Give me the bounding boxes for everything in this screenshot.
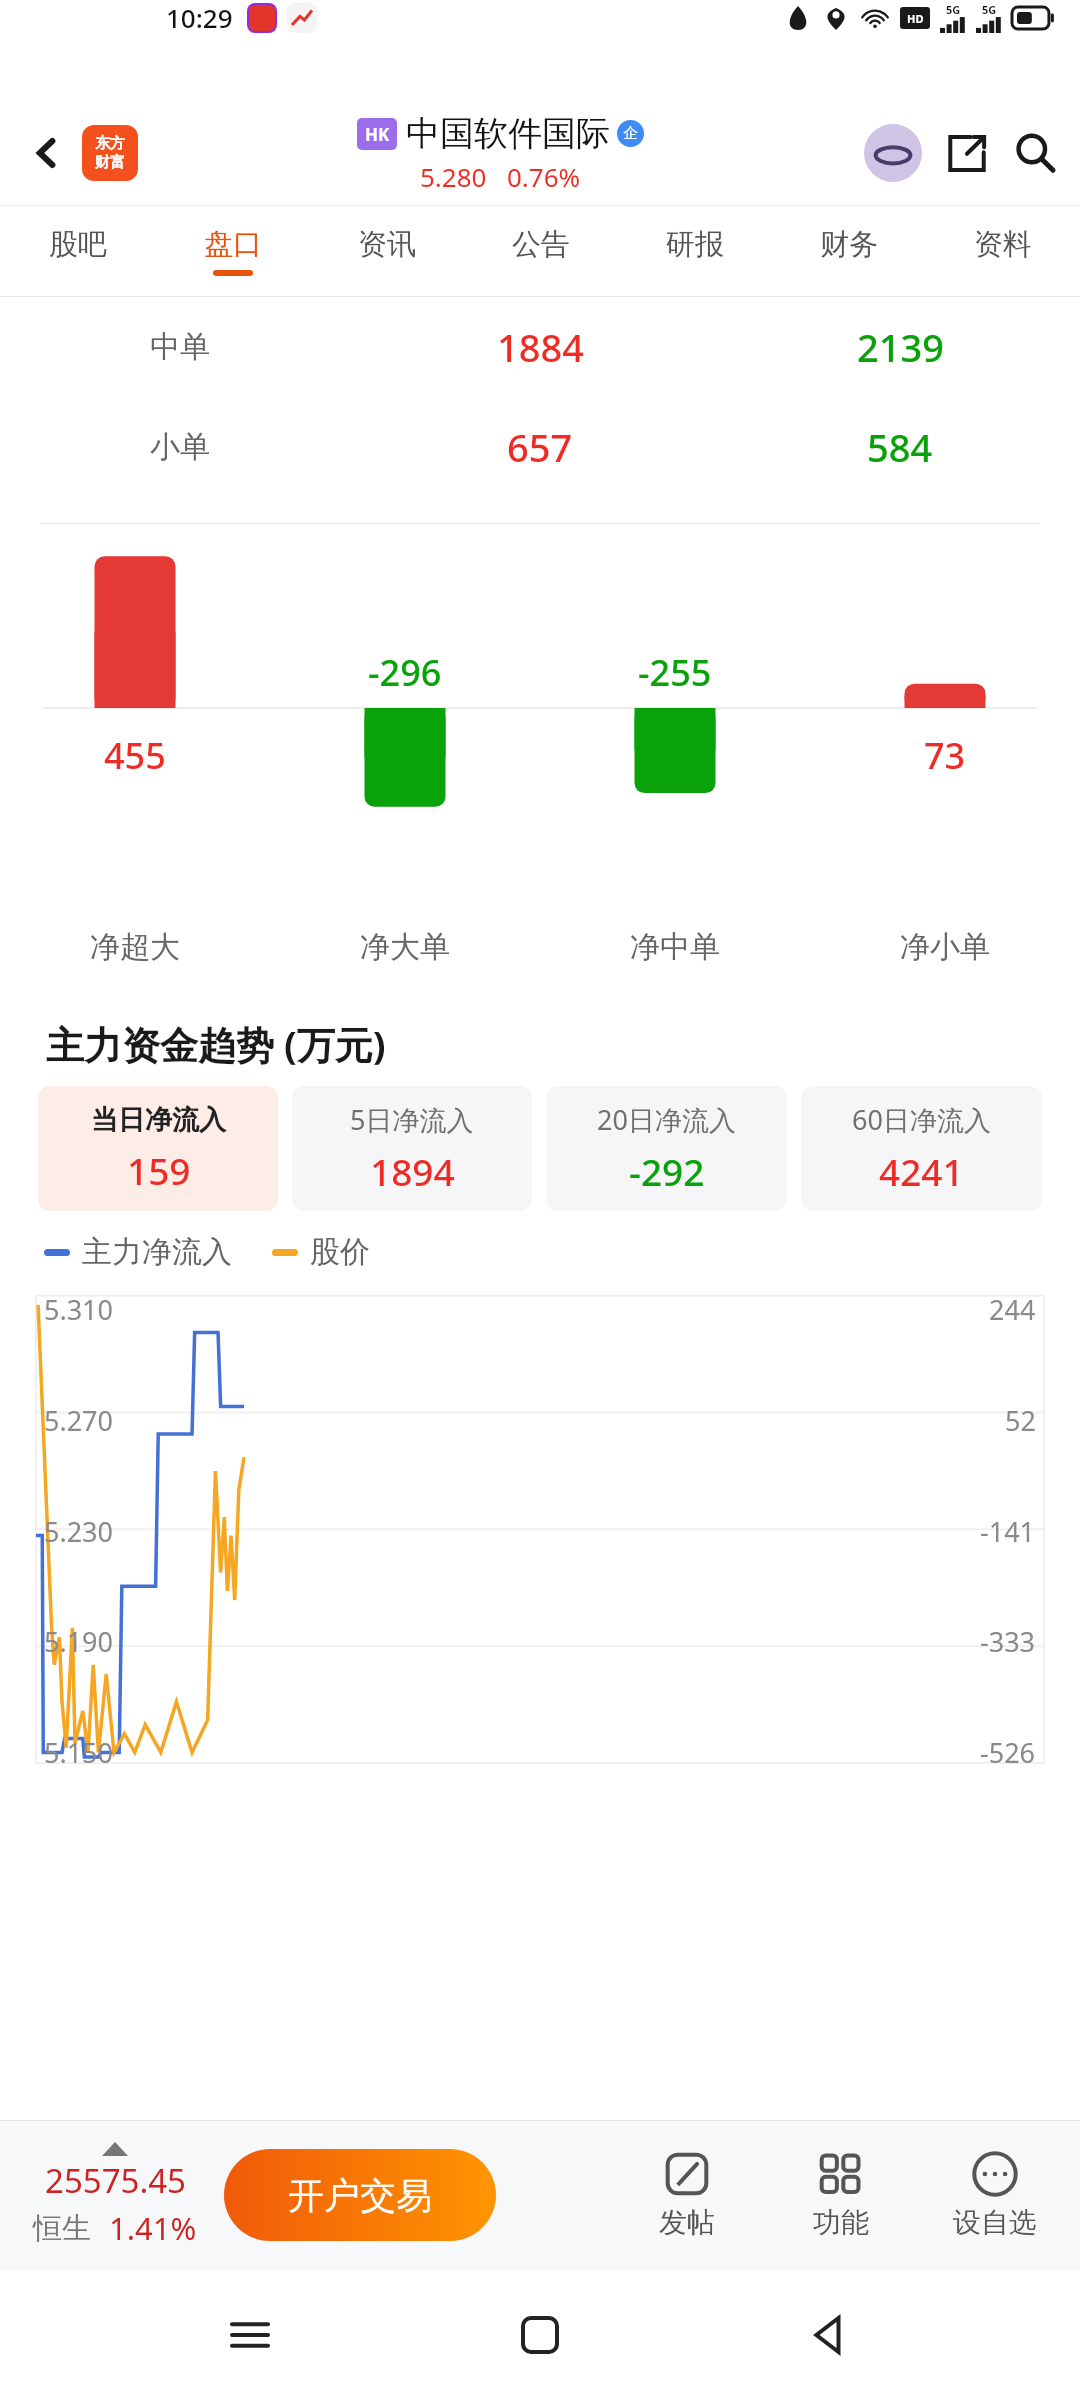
staticText: 5.230 <box>44 1513 114 1550</box>
staticText: 5日净流入 <box>350 1101 474 1138</box>
staticText: HK <box>365 123 390 146</box>
staticText: 0.76% <box>507 159 581 194</box>
staticText: -141 <box>980 1513 1036 1550</box>
staticText: 净超大 <box>90 928 180 966</box>
staticText: 净中单 <box>630 928 720 966</box>
staticText: HD <box>907 11 924 26</box>
staticText: 主力净流入 <box>82 1233 232 1271</box>
staticText: 恒生 <box>33 2210 91 2247</box>
button[interactable]: Back <box>18 124 76 182</box>
staticText: 股价 <box>310 1233 370 1271</box>
staticText: 当日净流入 <box>91 1103 226 1137</box>
button[interactable]: HK <box>357 112 644 194</box>
staticText: -296 <box>368 648 442 697</box>
button[interactable]: 开户交易 <box>224 2149 496 2241</box>
button[interactable]: 5日净流入 <box>292 1086 532 1211</box>
button[interactable]: 资料 <box>926 206 1080 296</box>
staticText: 5.310 <box>44 1291 114 1328</box>
staticText: 财富 <box>95 153 125 172</box>
button[interactable]: 功能 <box>776 2151 906 2240</box>
staticText: 中国软件国际 <box>406 112 610 155</box>
staticText: 73 <box>924 731 966 780</box>
staticText: 657 <box>507 421 573 473</box>
button[interactable]: 盘口 <box>155 206 310 296</box>
staticText: 开户交易 <box>288 2173 432 2218</box>
button[interactable]: 当日净流入 <box>38 1086 278 1211</box>
staticText: 1884 <box>497 321 584 373</box>
staticText: 5.270 <box>44 1402 114 1439</box>
staticText: 净大单 <box>360 928 450 966</box>
button[interactable]: Home <box>500 2295 580 2375</box>
staticText: 财务 <box>820 226 878 263</box>
staticText: 功能 <box>813 2205 869 2240</box>
staticText: 企 <box>623 124 638 143</box>
staticText: 盘口 <box>204 226 262 263</box>
staticText: 52 <box>1005 1402 1036 1439</box>
button[interactable]: Share <box>940 126 994 180</box>
button[interactable]: 发帖 <box>622 2151 752 2240</box>
button[interactable]: 资讯 <box>310 206 464 296</box>
staticText: 584 <box>867 421 933 473</box>
button[interactable]: 20日净流入 <box>546 1086 787 1211</box>
staticText: 资讯 <box>358 226 416 263</box>
staticText: 公告 <box>512 226 570 263</box>
staticText: 发帖 <box>659 2205 715 2240</box>
staticText: 研报 <box>666 226 724 263</box>
staticText: 1894 <box>370 1146 455 1196</box>
button[interactable]: 60日净流入 <box>801 1086 1042 1211</box>
staticText: 5G <box>946 2 961 17</box>
staticText: 资料 <box>974 226 1032 263</box>
staticText: 股吧 <box>49 226 107 263</box>
button[interactable]: Avatar <box>864 124 922 182</box>
button[interactable]: Back <box>790 2295 870 2375</box>
staticText: 20日净流入 <box>597 1101 736 1138</box>
button[interactable]: 股吧 <box>0 206 155 296</box>
staticText: 455 <box>104 731 166 780</box>
button[interactable]: 东方财富 <box>82 125 138 181</box>
staticText: 中单 <box>150 328 210 366</box>
button[interactable]: 财务 <box>772 206 926 296</box>
button[interactable]: 设自选 <box>930 2151 1060 2240</box>
button[interactable]: Recents <box>210 2295 290 2375</box>
staticText: 60日净流入 <box>852 1101 991 1138</box>
staticText: -526 <box>980 1734 1036 1771</box>
staticText: 159 <box>127 1145 191 1195</box>
button[interactable]: 25575.45 <box>20 2142 210 2249</box>
staticText: 设自选 <box>953 2205 1037 2240</box>
staticText: -255 <box>638 648 712 697</box>
staticText: 主力资金趋势 (万元) <box>46 1018 386 1070</box>
staticText: 1.41% <box>109 2207 197 2249</box>
staticText: 10:29 <box>166 0 233 35</box>
staticText: 小单 <box>150 428 210 466</box>
staticText: 4241 <box>879 1146 964 1196</box>
staticText: 东方 <box>95 134 125 153</box>
staticText: -333 <box>980 1623 1036 1660</box>
button[interactable]: 研报 <box>618 206 772 296</box>
staticText: 5.150 <box>44 1734 114 1771</box>
staticText: 5.190 <box>44 1623 114 1660</box>
staticText: -292 <box>629 1146 705 1196</box>
staticText: 244 <box>989 1291 1036 1328</box>
button[interactable]: Search <box>1008 126 1062 180</box>
staticText: 5G <box>982 2 997 17</box>
staticText: 净小单 <box>900 928 990 966</box>
staticText: 5.280 <box>420 159 487 194</box>
staticText: 25575.45 <box>45 2158 186 2203</box>
button[interactable]: 公告 <box>464 206 618 296</box>
staticText: 2139 <box>857 321 944 373</box>
